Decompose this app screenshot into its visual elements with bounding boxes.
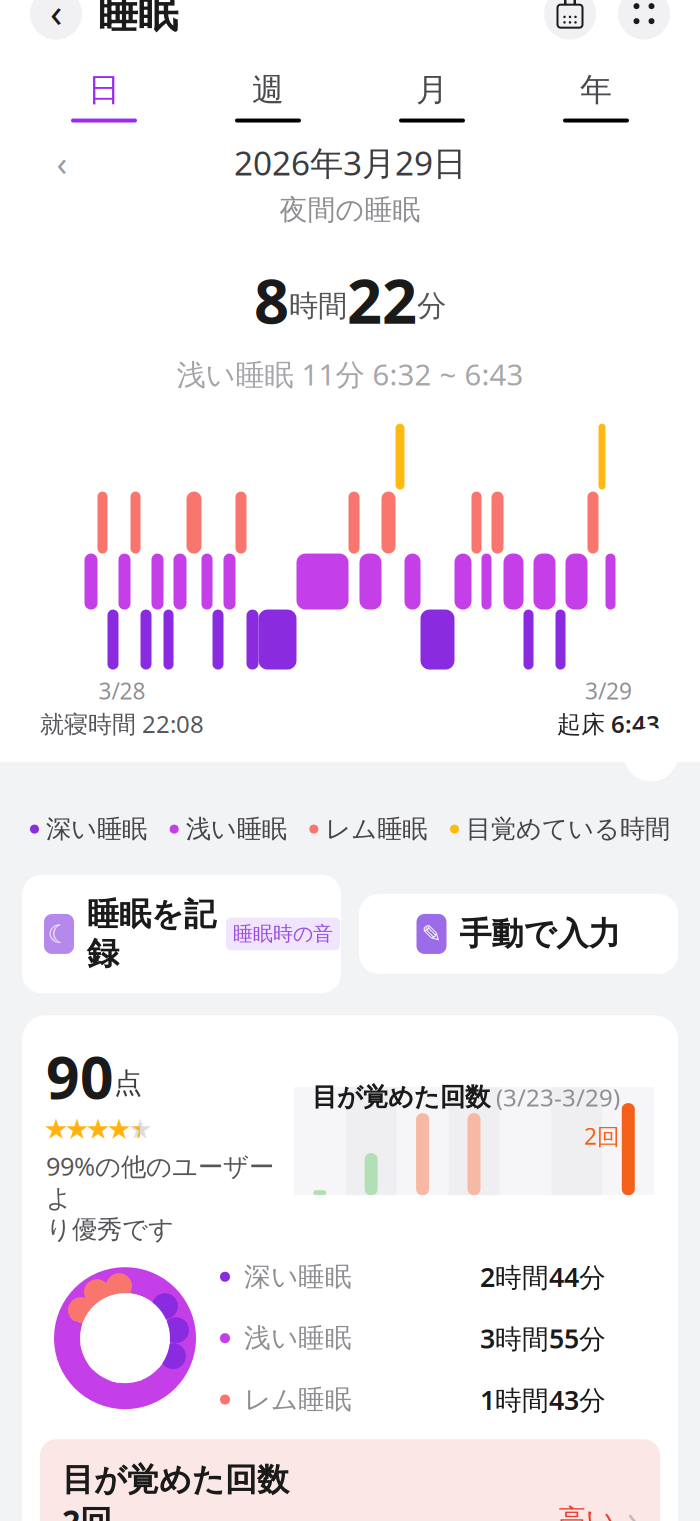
- button[interactable]: 週: [186, 70, 350, 122]
- button[interactable]: 月: [350, 70, 514, 122]
- staticText: 目が覚めた回数: [312, 1081, 490, 1113]
- staticText: 高い: [558, 1502, 615, 1521]
- staticText: 3/29: [585, 676, 632, 706]
- staticText: 8: [254, 259, 289, 341]
- staticText: ★: [106, 1113, 131, 1145]
- staticText: 目覚めている時間: [466, 813, 670, 845]
- staticText: ★: [131, 1113, 156, 1145]
- staticText: (3/23-3/29): [496, 1081, 620, 1113]
- staticText: ✎: [421, 920, 441, 947]
- staticText: 1時間43分: [480, 1382, 606, 1417]
- button[interactable]: 戻る: [30, 0, 82, 42]
- staticText: 99%の他のユーザーよ り優秀です: [46, 1149, 274, 1245]
- staticText: 日: [88, 70, 120, 109]
- staticText: 3/28: [98, 676, 145, 706]
- staticText: 分: [417, 288, 446, 324]
- staticText: 手動で入力: [459, 914, 620, 954]
- staticText: ›: [627, 1495, 638, 1521]
- staticText: レム睡眠: [244, 1383, 352, 1416]
- button[interactable]: ☾: [22, 875, 341, 993]
- staticText: ★: [64, 1113, 89, 1145]
- staticText: レム睡眠: [325, 813, 427, 845]
- staticText: 就寝時間 22:08: [40, 708, 204, 740]
- staticText: 目が覚めた回数 2回: [62, 1457, 289, 1521]
- staticText: 夜間の睡眠: [279, 193, 420, 227]
- staticText: ★: [43, 1113, 68, 1145]
- staticText: 月: [416, 70, 448, 109]
- staticText: ★: [85, 1113, 110, 1145]
- button[interactable]: 前の日: [40, 141, 84, 185]
- staticText: 90: [46, 1037, 114, 1115]
- staticText: 2時間44分: [480, 1259, 606, 1294]
- staticText: 週: [252, 70, 284, 109]
- staticText: 時間: [289, 288, 347, 324]
- button[interactable]: 年: [514, 70, 678, 122]
- staticText: ★: [127, 1113, 152, 1145]
- staticText: 年: [580, 70, 612, 109]
- staticText: 浅い睡眠 11分 6:32 ~ 6:43: [176, 355, 523, 394]
- staticText: 22: [347, 259, 417, 341]
- staticText: 浅い睡眠: [244, 1322, 352, 1355]
- button[interactable]: 日: [22, 70, 186, 122]
- staticText: 2026年3月29日: [234, 140, 466, 185]
- button[interactable]: 目が覚めた回数 2回: [40, 1439, 660, 1521]
- staticText: 起床 6:43: [557, 708, 660, 740]
- button[interactable]: ✎: [359, 894, 678, 974]
- staticText: 2回: [584, 1121, 620, 1151]
- staticText: 3時間55分: [480, 1320, 606, 1356]
- staticText: 深い睡眠: [46, 813, 147, 845]
- button[interactable]: カレンダー: [544, 0, 596, 40]
- staticText: 深い睡眠: [244, 1260, 352, 1293]
- staticText: 睡眠: [98, 0, 178, 38]
- staticText: 点: [114, 1066, 142, 1100]
- staticText: ‹: [50, 0, 62, 38]
- button[interactable]: その他のオプション: [618, 0, 670, 40]
- staticText: 睡眠を記録: [87, 895, 216, 973]
- staticText: 浅い睡眠: [186, 813, 287, 845]
- staticText: ☾: [47, 920, 70, 948]
- staticText: 睡眠時の音: [233, 922, 333, 946]
- staticText: ‹: [56, 140, 67, 186]
